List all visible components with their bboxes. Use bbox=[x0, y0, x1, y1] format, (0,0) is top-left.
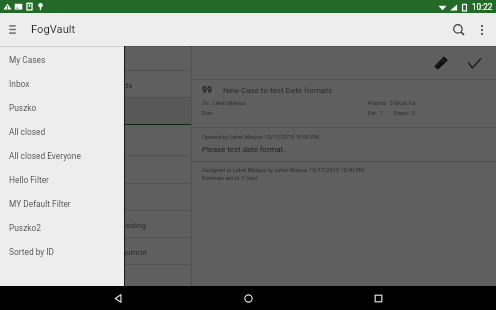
button[interactable]: MY Default Filter bbox=[0, 192, 124, 216]
button[interactable]: 92 Sweet roll danish bbox=[0, 265, 191, 286]
staticText: 100 Sesame snaps bbox=[9, 54, 80, 63]
staticText: To: Lehel Matyus bbox=[202, 100, 246, 107]
staticText: MY Default Filter bbox=[9, 199, 71, 209]
button[interactable]: Sorted by ID bbox=[0, 240, 124, 264]
staticText: Elaps: 0 bbox=[394, 110, 415, 117]
staticText: My Cases bbox=[9, 55, 46, 65]
button[interactable]: 93 Lemon drops tart croissant gummi bbox=[0, 238, 191, 264]
button[interactable]: Edit bbox=[429, 51, 453, 75]
button[interactable]: More options bbox=[470, 18, 493, 41]
button[interactable]: 99 New Case to test Date formats bbox=[0, 71, 191, 97]
button[interactable]: My Cases bbox=[0, 48, 124, 72]
button[interactable]: Back bbox=[106, 286, 130, 310]
staticText: Opened by Lehel Matyus 10/17/2015 10:50 … bbox=[202, 134, 320, 141]
staticText: All closed Everyone bbox=[9, 151, 81, 161]
staticText: 95 Marzipan icing new status bbox=[9, 193, 117, 202]
button[interactable]: Hello Filter bbox=[0, 168, 124, 192]
staticText: Please test date format. bbox=[202, 145, 286, 154]
button[interactable]: 97 Jelly beans topping bbox=[0, 125, 191, 155]
staticText: Due: bbox=[202, 110, 214, 117]
staticText: Puszko bbox=[9, 103, 37, 113]
staticText: All closed bbox=[9, 127, 46, 137]
staticText: 94 Liquorice cake check downloading bbox=[9, 220, 146, 229]
button[interactable]: 100 Sesame snaps bbox=[0, 46, 191, 70]
button[interactable]: Inbox bbox=[0, 72, 124, 96]
staticText: 98 Tiramisu pudding bbox=[9, 107, 85, 116]
button[interactable]: 94 Liquorice cake check downloading bbox=[0, 211, 191, 237]
button[interactable]: All closed bbox=[0, 120, 124, 144]
button[interactable]: Puszko bbox=[0, 96, 124, 120]
button[interactable]: 98 Tiramisu pudding bbox=[0, 98, 191, 124]
staticText: Inbox bbox=[9, 79, 30, 89]
button[interactable]: Home bbox=[236, 286, 260, 310]
staticText: Sorted by ID bbox=[9, 247, 55, 257]
staticText: New Case to test Date formats bbox=[223, 86, 333, 95]
button[interactable]: All closed Everyone bbox=[0, 144, 124, 168]
staticText: Estimate set to '1 hour' bbox=[202, 175, 259, 182]
button[interactable]: Recent apps bbox=[366, 286, 390, 310]
staticText: Assigned to Lehel Matyus by Lehel Matyus… bbox=[202, 167, 364, 174]
button[interactable]: Puszko2 bbox=[0, 216, 124, 240]
button[interactable]: Search bbox=[447, 18, 470, 41]
button[interactable]: Done bbox=[462, 51, 486, 75]
staticText: Priority: 3 Must Fix bbox=[368, 100, 416, 107]
staticText: Est: 1 bbox=[368, 110, 384, 117]
staticText: 93 Lemon drops tart croissant gummi bbox=[9, 247, 147, 256]
staticText: 99 New Case to test Date formats bbox=[9, 80, 133, 89]
staticText: Puszko2 bbox=[9, 223, 41, 233]
staticText: 10:22 bbox=[472, 2, 493, 12]
staticText: Hello Filter bbox=[9, 175, 49, 185]
button[interactable]: 96 Chocolate cake tart bbox=[0, 156, 191, 183]
button[interactable]: Open navigation drawer bbox=[3, 20, 22, 39]
staticText: 99 bbox=[202, 85, 212, 95]
staticText: FogVault bbox=[31, 23, 76, 36]
button[interactable]: 95 Marzipan icing new status bbox=[0, 184, 191, 210]
